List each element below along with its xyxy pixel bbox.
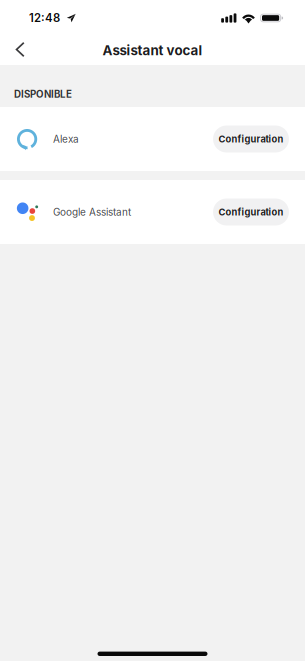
button[interactable]: Back [5,35,35,66]
staticText: Alexa [53,133,79,145]
staticText: Configuration [218,133,283,145]
staticText: 12:48 [29,11,60,25]
staticText: Assistant vocal [102,42,202,58]
button[interactable]: Configuration [213,198,289,225]
staticText: Configuration [218,206,283,218]
staticText: DISPONIBLE [14,88,72,100]
staticText: Google Assistant [53,206,131,218]
button[interactable]: Configuration [213,125,289,152]
